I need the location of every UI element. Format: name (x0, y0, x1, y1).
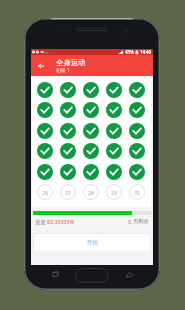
button[interactable]: Day 14 completed (106, 123, 122, 139)
button[interactable]: Day 29 (106, 184, 122, 200)
staticText: 26 (42, 189, 48, 196)
button[interactable]: Day 13 completed (83, 123, 99, 139)
staticText: 5 (128, 218, 133, 225)
button[interactable]: Day 24 completed (106, 164, 122, 180)
staticText: 83.33333% (47, 218, 75, 225)
button[interactable]: Day 3 completed (83, 82, 99, 98)
button[interactable]: Day 22 completed (60, 164, 76, 180)
button[interactable]: Day 10 completed (129, 102, 145, 118)
button[interactable]: Day 6 completed (37, 102, 53, 118)
staticText: 30 (134, 189, 140, 196)
button[interactable]: Day 16 completed (37, 143, 53, 159)
staticText: 28 (88, 189, 94, 196)
button[interactable]: Day 20 completed (129, 143, 145, 159)
staticText: 全身运动 (56, 58, 86, 67)
button[interactable]: Day 12 completed (60, 123, 76, 139)
button[interactable]: Back (34, 55, 48, 76)
button[interactable]: Day 9 completed (106, 102, 122, 118)
staticText: 初级 1 (56, 67, 70, 74)
staticText: 45% (125, 49, 134, 55)
staticText: 14:40 (140, 49, 152, 55)
button[interactable]: Day 28 (83, 184, 99, 200)
button[interactable]: Day 23 completed (83, 164, 99, 180)
staticText: 天剩余 (133, 218, 149, 225)
button[interactable]: Day 21 completed (37, 164, 53, 180)
button[interactable]: Day 18 completed (83, 143, 99, 159)
button[interactable]: Day 15 completed (129, 123, 145, 139)
button[interactable]: Day 30 (129, 184, 145, 200)
button[interactable]: Day 17 completed (60, 143, 76, 159)
button[interactable]: Day 25 completed (129, 164, 145, 180)
button[interactable]: Day 2 completed (60, 82, 76, 98)
button[interactable]: Day 8 completed (83, 102, 99, 118)
staticText: 27 (65, 189, 71, 196)
button[interactable]: Day 5 completed (129, 82, 145, 98)
button[interactable]: 开始 (34, 234, 150, 251)
staticText: 开始 (87, 239, 98, 246)
button[interactable]: Day 27 (60, 184, 76, 200)
button[interactable]: Day 19 completed (106, 143, 122, 159)
button[interactable]: Day 11 completed (37, 123, 53, 139)
button[interactable]: Day 26 (37, 184, 53, 200)
staticText: 进度 (35, 218, 47, 225)
button[interactable]: Day 7 completed (60, 102, 76, 118)
staticText: 29 (111, 189, 117, 196)
button[interactable]: Day 1 completed (37, 82, 53, 98)
button[interactable]: Day 4 completed (106, 82, 122, 98)
